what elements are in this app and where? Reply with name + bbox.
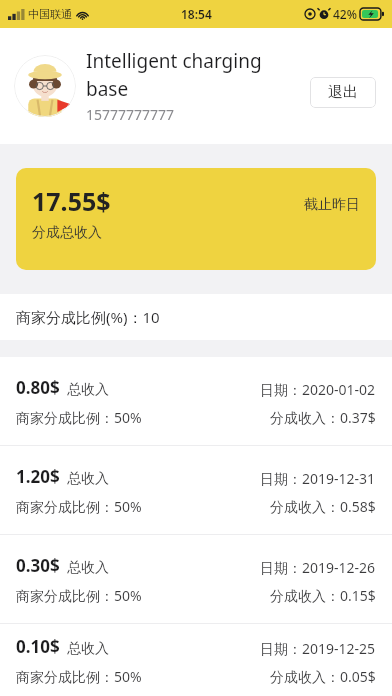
staticText: 分成收入：0.58$ xyxy=(270,497,376,516)
staticText: 日期：2019-12-25 xyxy=(260,639,376,658)
staticText: 分成收入：0.05$ xyxy=(270,667,376,686)
staticText: 总收入 xyxy=(67,470,109,488)
staticText: 15777777777 xyxy=(86,105,175,124)
button[interactable]: 1.20$ xyxy=(0,446,392,534)
staticText: 商家分成比例(%)：10 xyxy=(16,307,160,327)
button[interactable]: 0.30$ xyxy=(0,535,392,623)
staticText: 0.10$ xyxy=(16,635,60,658)
button[interactable]: 17.55$ xyxy=(16,168,376,270)
staticText: 总收入 xyxy=(67,559,109,577)
staticText: 分成收入：0.15$ xyxy=(270,586,376,605)
staticText: 总收入 xyxy=(67,381,109,399)
staticText: 截止昨日 xyxy=(304,196,360,214)
staticText: 商家分成比例：50% xyxy=(16,667,142,686)
button[interactable]: 退出 xyxy=(310,77,376,108)
staticText: 0.80$ xyxy=(16,376,60,399)
staticText: 0.30$ xyxy=(16,554,60,577)
staticText: 日期：2019-12-26 xyxy=(260,558,376,577)
staticText: 日期：2020-01-02 xyxy=(260,380,376,399)
staticText: 中国联通 xyxy=(28,7,72,21)
button[interactable]: 0.10$ xyxy=(0,624,392,696)
staticText: 总收入 xyxy=(67,640,109,658)
staticText: 1.20$ xyxy=(16,465,60,488)
staticText: 退出 xyxy=(328,83,358,102)
staticText: 分成总收入 xyxy=(32,224,102,242)
staticText: 18:54 xyxy=(181,6,212,22)
staticText: 42% xyxy=(333,6,357,22)
button[interactable]: 0.80$ xyxy=(0,357,392,445)
staticText: 商家分成比例：50% xyxy=(16,586,142,605)
staticText: Intelligent charging base xyxy=(86,48,296,102)
staticText: 商家分成比例：50% xyxy=(16,408,142,427)
staticText: 商家分成比例：50% xyxy=(16,497,142,516)
staticText: 分成收入：0.37$ xyxy=(270,408,376,427)
staticText: 17.55$ xyxy=(32,184,111,218)
staticText: 日期：2019-12-31 xyxy=(260,469,376,488)
